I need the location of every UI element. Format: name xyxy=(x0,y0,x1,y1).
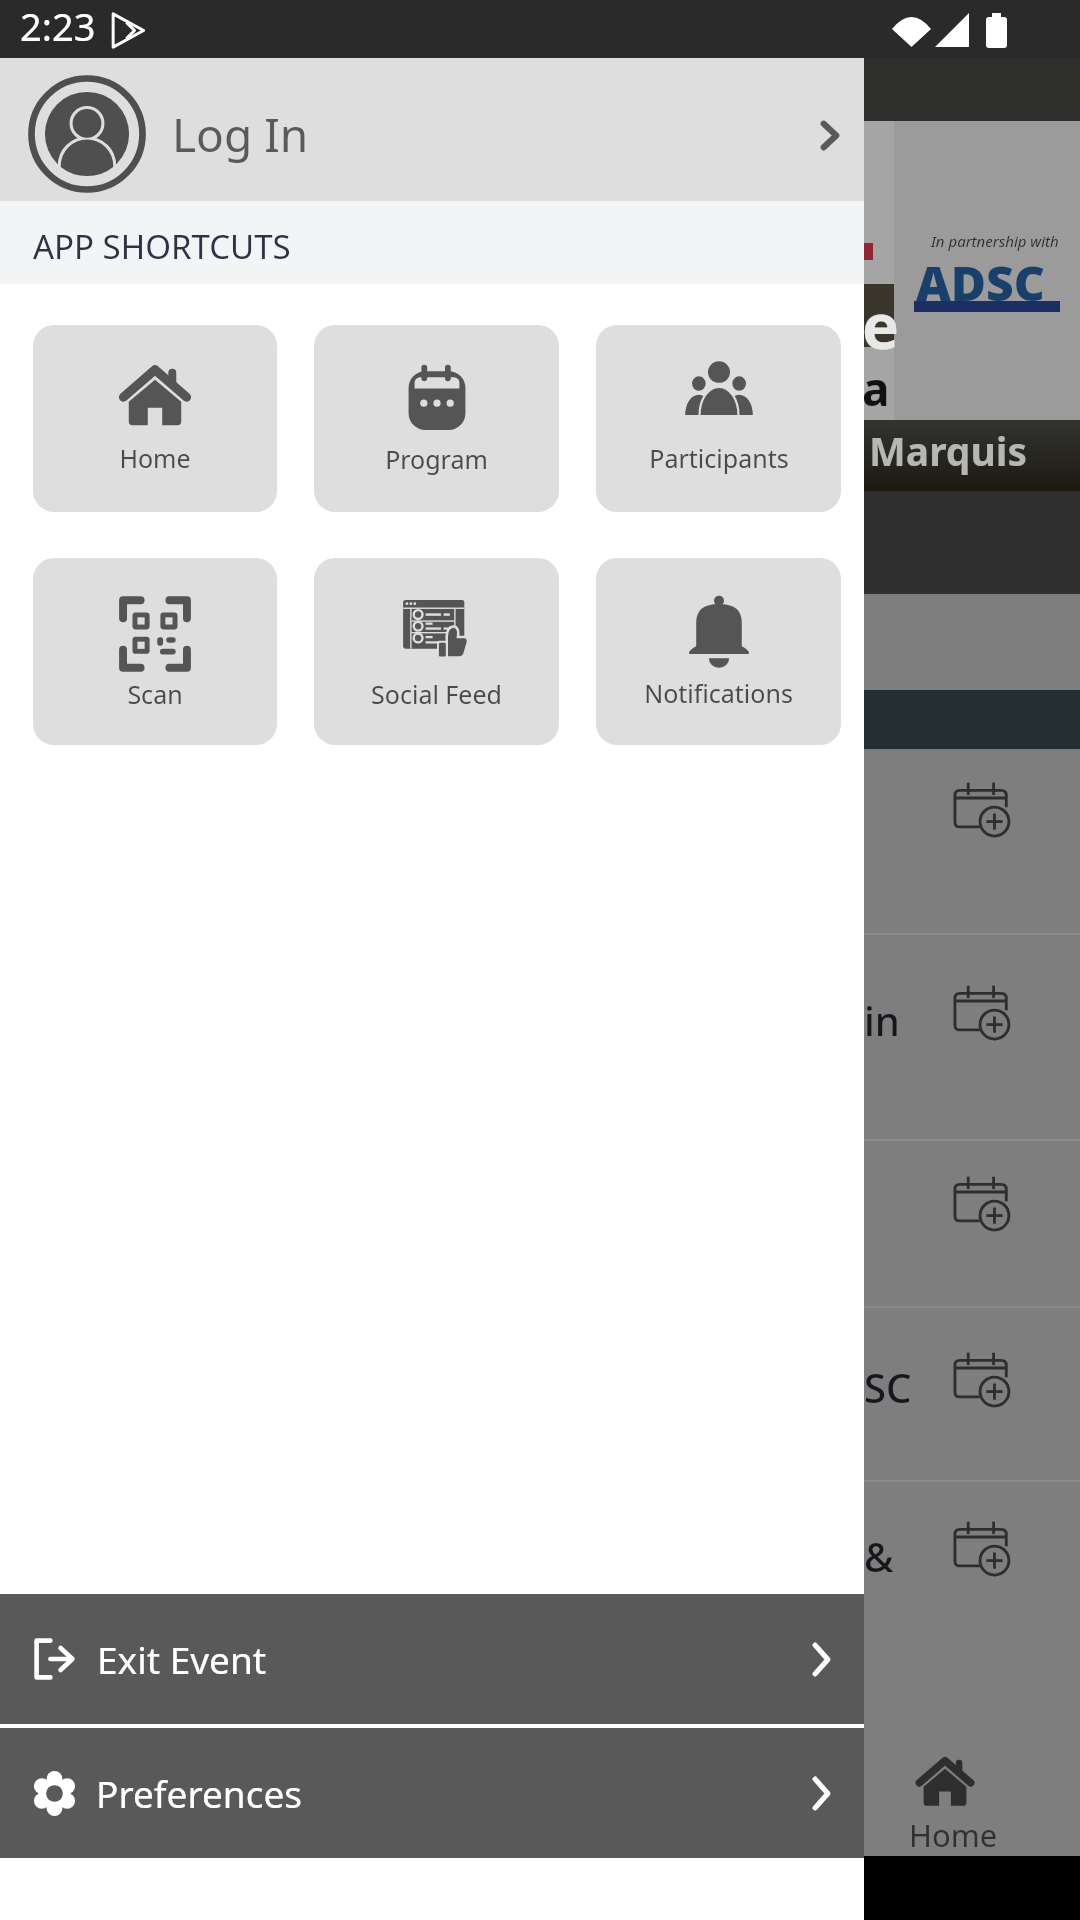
button[interactable]: Exit Event xyxy=(0,1594,864,1724)
staticText: Marquis xyxy=(869,424,1028,477)
button[interactable]: Program xyxy=(314,325,559,512)
button[interactable]: Add to calendar xyxy=(952,983,1011,1042)
staticText: Preferences xyxy=(96,1768,303,1818)
staticText: Social Feed xyxy=(371,677,502,711)
button[interactable]: Participants xyxy=(596,325,841,512)
staticText: 2:23 xyxy=(20,0,96,52)
staticText: APP SHORTCUTS xyxy=(33,224,291,269)
staticText: ADSC xyxy=(916,250,1045,315)
staticText: in xyxy=(864,993,900,1047)
button[interactable]: Add to calendar xyxy=(952,1350,1011,1409)
staticText: Program xyxy=(385,442,488,476)
staticText: Home xyxy=(119,441,191,475)
button[interactable]: Home xyxy=(33,325,277,512)
button[interactable]: Add to calendar xyxy=(952,1519,1011,1578)
other: Google Play xyxy=(110,12,145,49)
staticText: Log In xyxy=(172,103,309,166)
button[interactable]: Preferences xyxy=(0,1728,864,1858)
button[interactable]: Add to calendar xyxy=(0,935,1080,1141)
staticText: SC xyxy=(864,1360,912,1414)
button[interactable]: Scan xyxy=(33,558,277,745)
button[interactable]: Add to calendar xyxy=(0,1141,1080,1308)
staticText: a xyxy=(862,357,890,420)
staticText: In partnership with xyxy=(931,231,1059,251)
button[interactable]: Add to calendar xyxy=(0,749,1080,935)
button[interactable]: Log In xyxy=(0,58,864,201)
staticText: Scan xyxy=(127,677,183,711)
button[interactable]: Add to calendar xyxy=(952,780,1011,839)
button[interactable]: Add to calendar xyxy=(952,1174,1011,1233)
staticText: e xyxy=(862,283,900,367)
button[interactable]: Notifications xyxy=(596,558,841,745)
button[interactable]: Home xyxy=(864,1722,1080,1856)
staticText: Exit Event xyxy=(97,1634,267,1684)
button[interactable]: Add to calendar xyxy=(0,1482,1080,1662)
staticText: Participants xyxy=(649,441,789,475)
staticText: Home xyxy=(909,1814,998,1856)
staticText: Notifications xyxy=(644,676,793,710)
staticText: & xyxy=(864,1529,894,1583)
button[interactable]: Add to calendar xyxy=(0,1308,1080,1482)
button[interactable]: Social Feed xyxy=(314,558,559,745)
